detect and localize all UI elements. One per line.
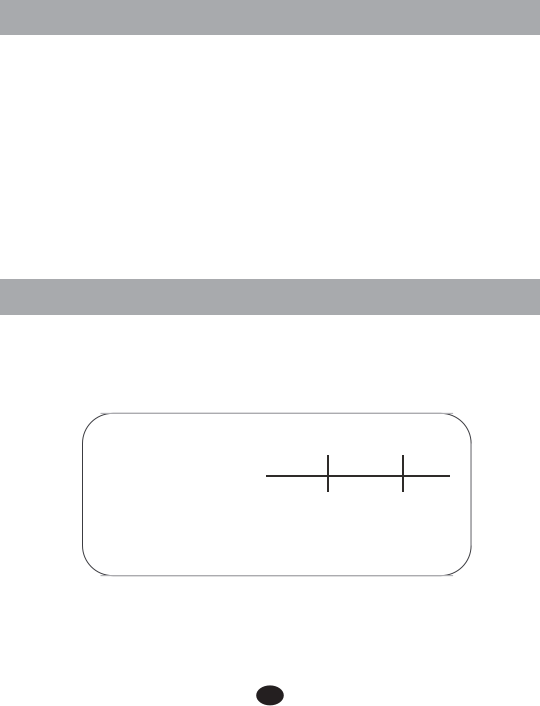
button[interactable]: Indicator <box>0 0 540 706</box>
button[interactable]: Card <box>0 0 540 706</box>
